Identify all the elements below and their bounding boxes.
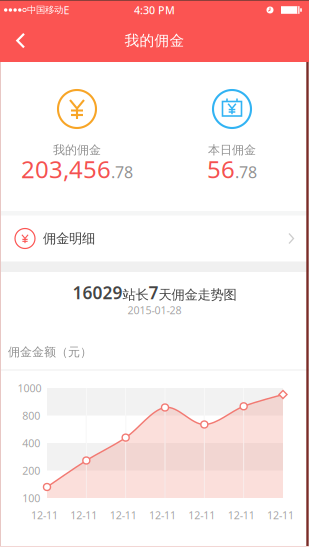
staticText: .78: [111, 161, 133, 183]
button[interactable]: 佣金明细: [0, 215, 309, 261]
staticText: 56: [207, 153, 235, 185]
staticText: 我的佣金: [124, 31, 184, 49]
staticText: 12-11: [31, 508, 58, 522]
staticText: 12-11: [228, 508, 255, 522]
staticText: 200: [22, 463, 40, 478]
staticText: 12-11: [267, 508, 294, 522]
staticText: 400: [22, 436, 40, 450]
staticText: 12-11: [188, 508, 215, 522]
staticText: 203,456: [21, 153, 111, 185]
staticText: 12-11: [70, 508, 97, 522]
staticText: 本日佣金: [208, 143, 256, 157]
staticText: .78: [235, 161, 257, 183]
staticText: 站长: [122, 287, 148, 303]
staticText: 4:30 PM: [134, 3, 175, 17]
staticText: 1000: [17, 381, 41, 395]
staticText: 2015-01-28: [127, 303, 181, 317]
staticText: 佣金金额（元）: [8, 345, 92, 359]
staticText: 12-11: [110, 508, 137, 522]
staticText: 12-11: [149, 508, 176, 522]
staticText: 16029: [72, 281, 122, 304]
button[interactable]: Back: [0, 0, 36, 44]
staticText: 800: [22, 408, 40, 423]
staticText: 佣金明细: [43, 230, 95, 247]
staticText: 我的佣金: [53, 143, 101, 157]
staticText: 7: [148, 281, 158, 304]
staticText: 100: [22, 491, 40, 505]
staticText: 中国移动: [27, 4, 63, 16]
staticText: 天佣金走势图: [158, 287, 236, 303]
staticText: E: [63, 3, 69, 17]
